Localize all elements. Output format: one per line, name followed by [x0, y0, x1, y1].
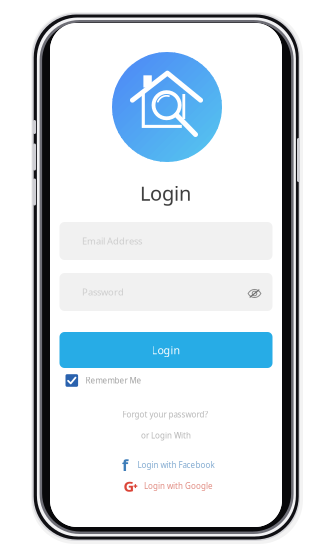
staticText: Email Address [82, 235, 142, 247]
staticText: Remember Me [86, 375, 142, 386]
staticText: or Login With [141, 430, 191, 441]
staticText: G [123, 476, 134, 496]
staticText: f [122, 454, 128, 476]
staticText: Password [82, 286, 124, 298]
staticText: Login with Google [144, 481, 213, 491]
staticText: Login [140, 180, 191, 206]
button[interactable]: f [122, 458, 218, 472]
staticText: Login with Facebook [137, 460, 214, 470]
button[interactable]: G [124, 479, 220, 493]
button[interactable]: Login [59, 332, 272, 368]
button[interactable]: Forgot your password? [115, 407, 215, 421]
button[interactable]: Show password [243, 284, 265, 302]
staticText: Login [151, 343, 180, 357]
staticText: Forgot your password? [122, 409, 207, 420]
button[interactable]: Remember Me [65, 371, 151, 389]
